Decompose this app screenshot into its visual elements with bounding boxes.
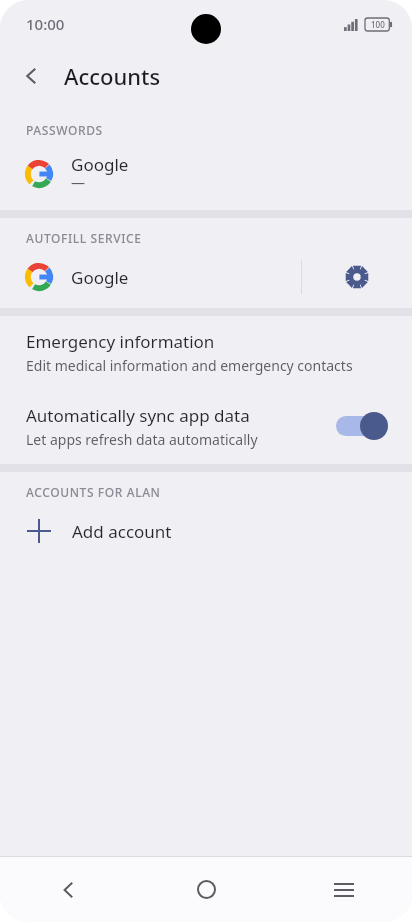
staticText: — bbox=[71, 173, 85, 192]
staticText: Let apps refresh data automatically bbox=[26, 430, 258, 449]
staticText: AUTOFILL SERVICE bbox=[26, 230, 142, 246]
staticText: Google bbox=[71, 266, 129, 289]
staticText: Accounts bbox=[64, 61, 161, 91]
staticText: PASSWORDS bbox=[26, 122, 103, 138]
staticText: Edit medical information and emergency c… bbox=[26, 356, 353, 375]
staticText: Google bbox=[71, 153, 129, 176]
button[interactable]: Recent apps bbox=[275, 857, 412, 922]
button[interactable]: Automatically sync app data bbox=[0, 388, 412, 464]
button[interactable]: Back bbox=[0, 857, 138, 922]
button[interactable]: Emergency information bbox=[0, 316, 412, 388]
button[interactable]: Autofill settings bbox=[302, 246, 412, 308]
staticText: 10:00 bbox=[26, 14, 65, 34]
staticText: ACCOUNTS FOR ALAN bbox=[26, 484, 161, 500]
button[interactable]: Home bbox=[138, 857, 275, 922]
staticText: Automatically sync app data bbox=[26, 404, 250, 427]
staticText: 100 bbox=[371, 19, 385, 30]
button[interactable]: Google bbox=[0, 138, 412, 210]
staticText: Add account bbox=[72, 520, 172, 543]
button[interactable]: Google bbox=[0, 246, 301, 308]
button[interactable]: Back bbox=[10, 54, 54, 98]
staticText: Emergency information bbox=[26, 330, 215, 353]
button[interactable]: Add account bbox=[0, 500, 412, 562]
